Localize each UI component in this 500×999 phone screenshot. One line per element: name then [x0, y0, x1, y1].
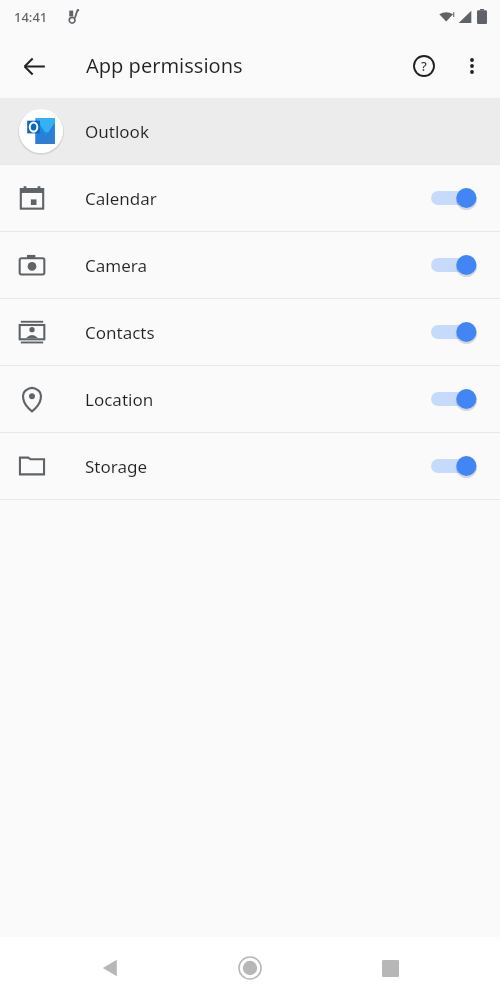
button[interactable]: More options	[448, 42, 496, 90]
button[interactable]: Outlook	[0, 98, 500, 164]
button[interactable]: Toggle permission	[430, 382, 482, 416]
staticText: Calendar	[85, 187, 157, 210]
button[interactable]: Location	[0, 366, 500, 432]
button[interactable]: Toggle permission	[430, 315, 482, 349]
button[interactable]: Back	[80, 938, 140, 998]
staticText: ?	[421, 57, 427, 75]
staticText: Contacts	[85, 321, 155, 344]
button[interactable]: Calendar	[0, 165, 500, 231]
button[interactable]: Toggle permission	[430, 449, 482, 483]
button[interactable]: Back	[10, 42, 58, 90]
staticText: 14:41	[14, 8, 48, 26]
staticText: Storage	[85, 455, 148, 478]
button[interactable]: Contacts	[0, 299, 500, 365]
staticText: Camera	[85, 254, 147, 277]
button[interactable]: Toggle permission	[430, 181, 482, 215]
button[interactable]: Toggle permission	[430, 248, 482, 282]
button[interactable]: Camera	[0, 232, 500, 298]
button[interactable]: Storage	[0, 433, 500, 499]
button[interactable]: Help	[400, 42, 448, 90]
button[interactable]: Home	[220, 938, 280, 998]
staticText: App permissions	[86, 52, 243, 79]
staticText: Location	[85, 388, 154, 411]
button[interactable]: Recent apps	[360, 938, 420, 998]
staticText: Outlook	[85, 120, 149, 143]
